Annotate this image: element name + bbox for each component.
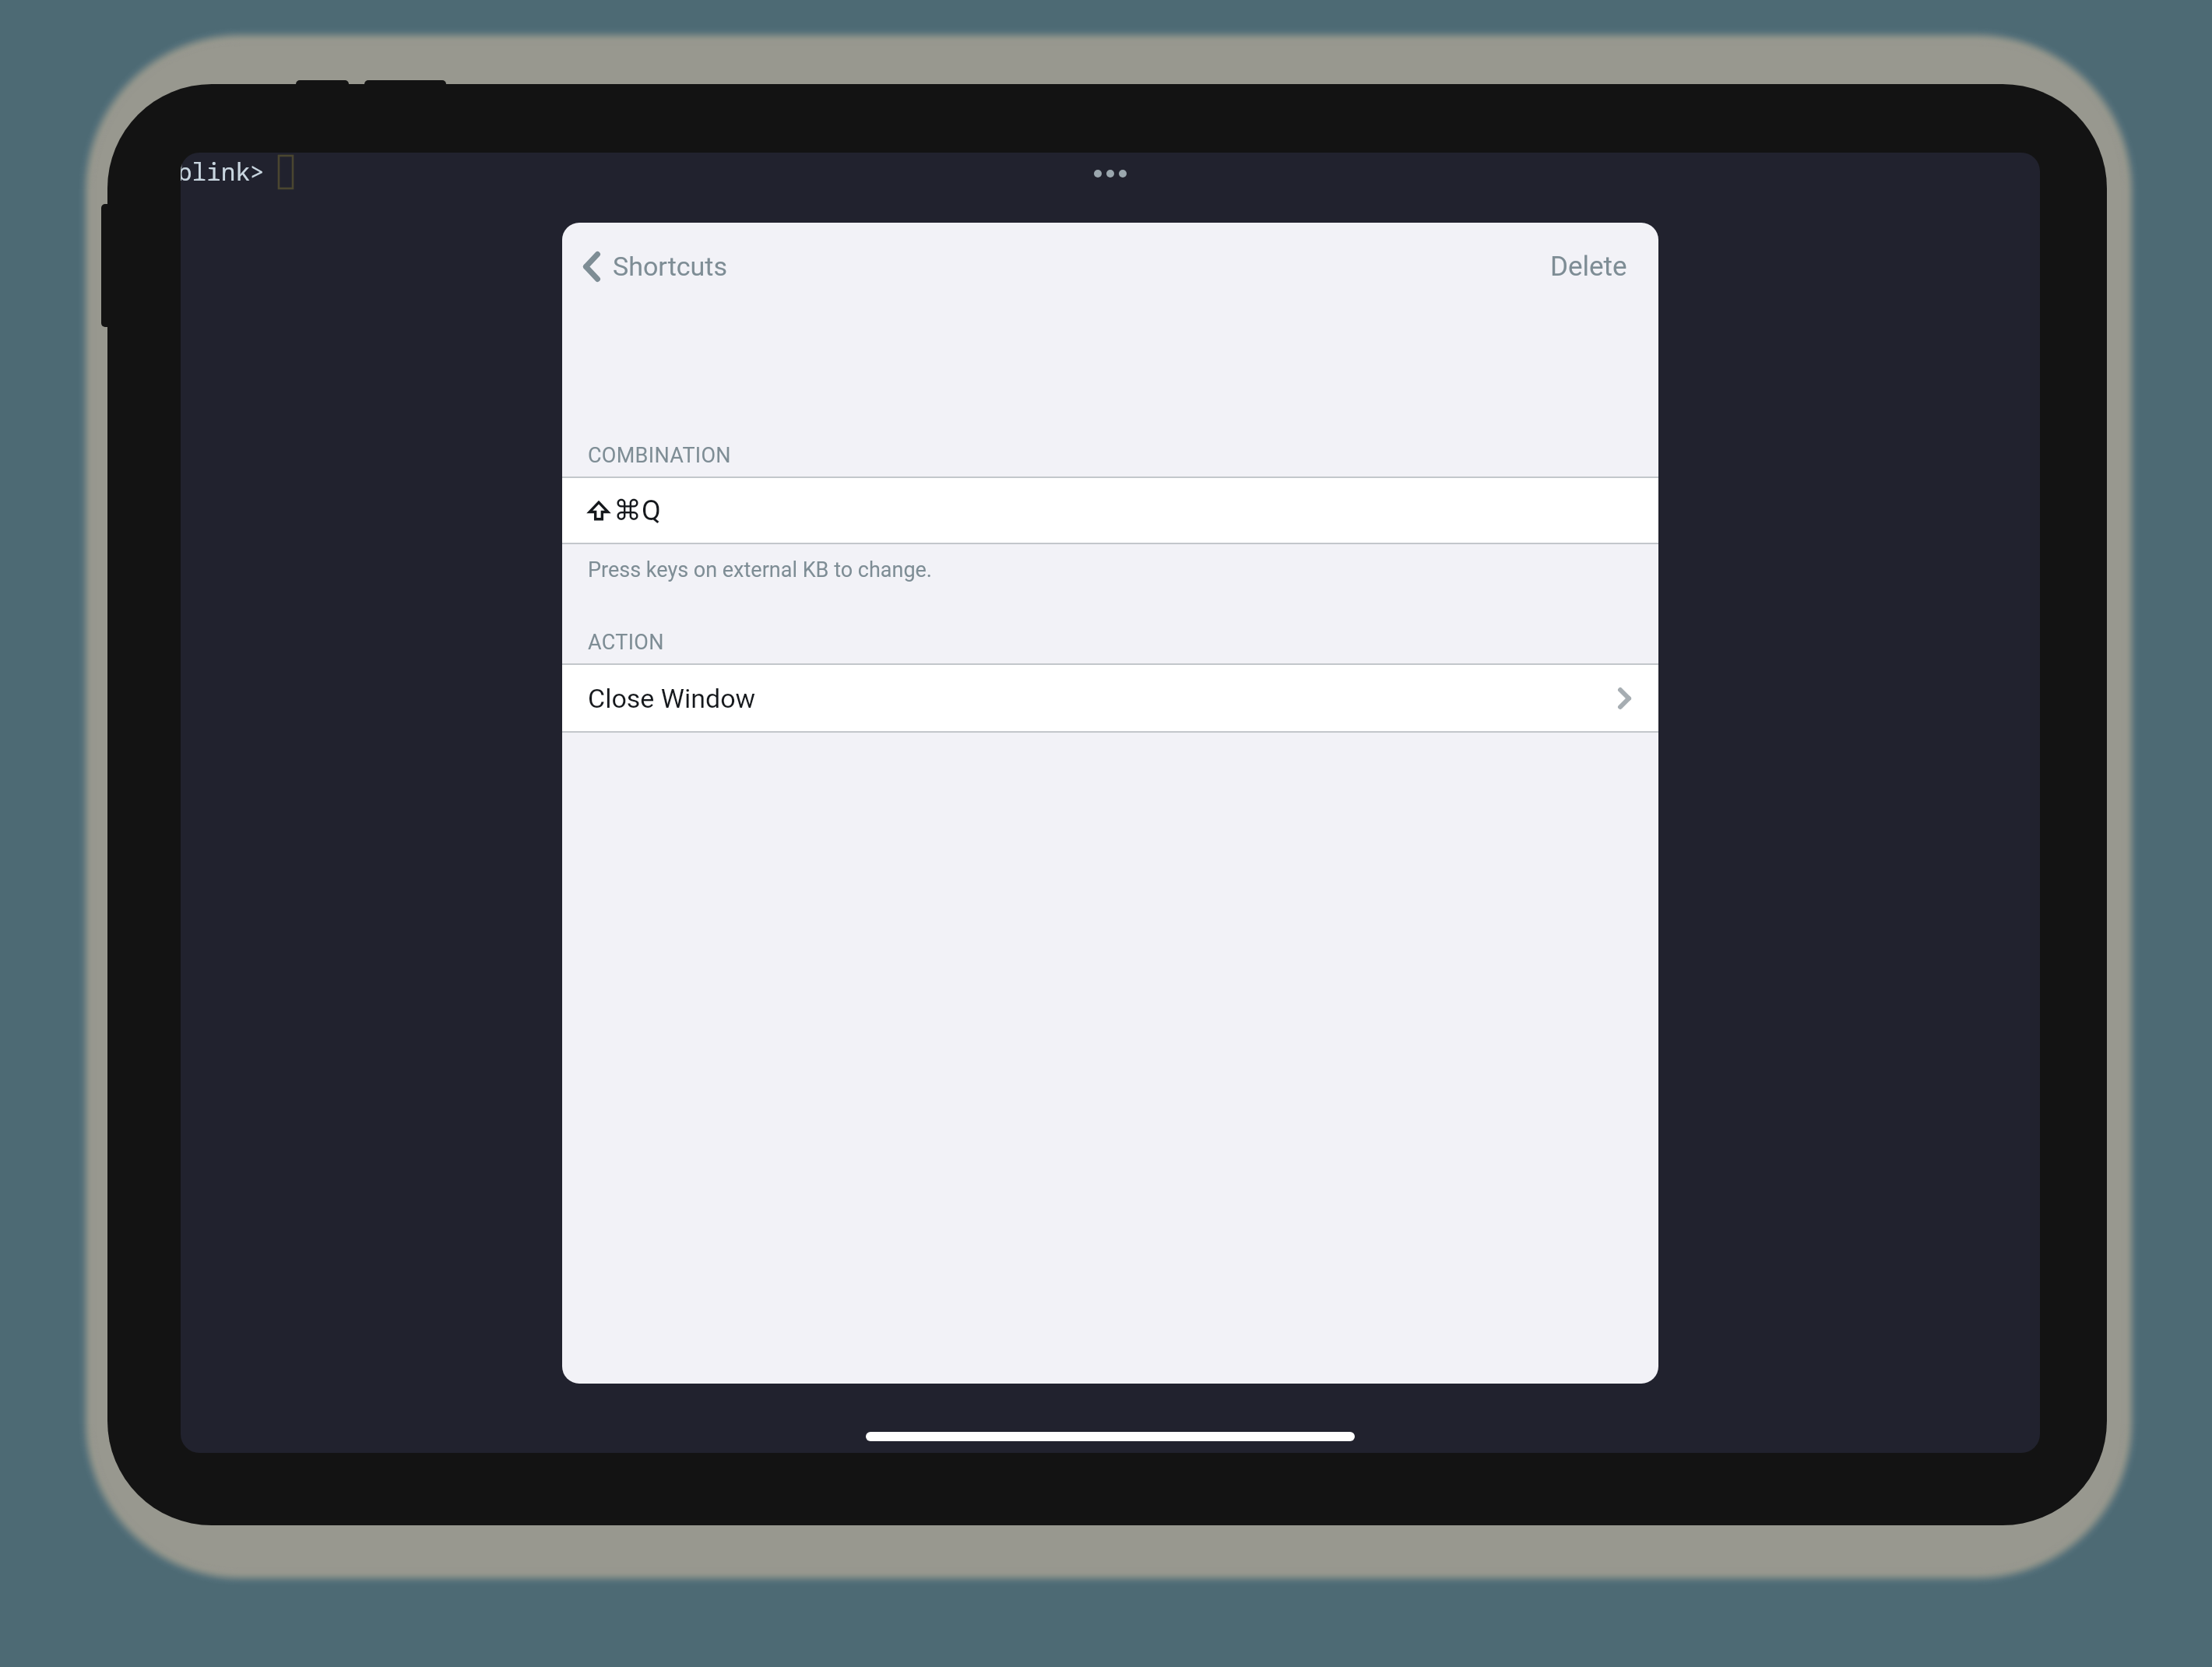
- staticText: ACTION: [588, 630, 664, 655]
- button[interactable]: Close Window: [562, 664, 1658, 732]
- staticText: blink>: [181, 155, 280, 188]
- staticText: Delete: [1550, 251, 1627, 283]
- button[interactable]: ⌘Q: [562, 477, 1658, 543]
- button[interactable]: Delete: [1519, 240, 1658, 294]
- button[interactable]: Multitasking controls: [1077, 163, 1144, 185]
- staticText: ⌘Q: [614, 494, 661, 527]
- staticText: Close Window: [588, 683, 756, 714]
- staticText: COMBINATION: [588, 443, 731, 468]
- button[interactable]: Shortcuts: [570, 240, 740, 293]
- staticText: Press keys on external KB to change.: [588, 557, 932, 582]
- staticText: Shortcuts: [613, 251, 727, 282]
